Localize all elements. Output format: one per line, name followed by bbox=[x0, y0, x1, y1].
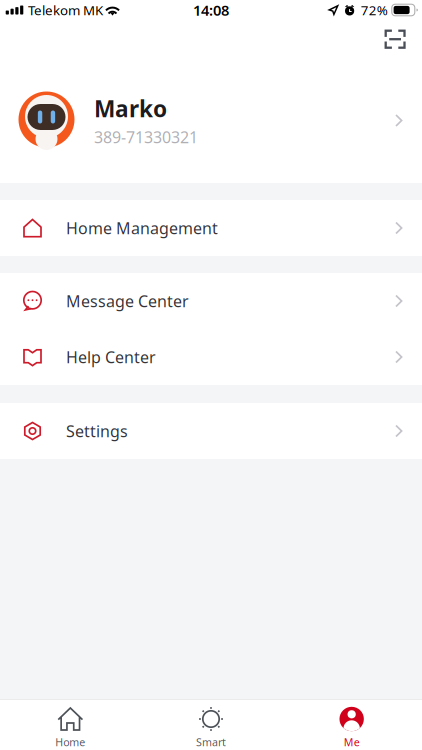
button[interactable]: Scan QR code bbox=[374, 20, 416, 58]
staticText: Smart bbox=[196, 735, 226, 749]
button[interactable]: Marko bbox=[0, 58, 422, 183]
staticText: Marko bbox=[94, 93, 167, 123]
staticText: 14:08 bbox=[193, 0, 229, 20]
button[interactable]: Me bbox=[281, 700, 422, 750]
staticText: 72% bbox=[361, 1, 388, 19]
staticText: Settings bbox=[66, 420, 128, 442]
button[interactable]: Home bbox=[0, 700, 141, 750]
button[interactable]: Settings bbox=[0, 403, 422, 459]
button[interactable]: Smart bbox=[141, 700, 281, 750]
staticText: 389-71330321 bbox=[94, 126, 198, 148]
staticText: Home bbox=[55, 735, 85, 749]
staticText: Home Management bbox=[66, 217, 218, 239]
staticText: Help Center bbox=[66, 346, 156, 368]
button[interactable]: Home Management bbox=[0, 200, 422, 256]
staticText: Message Center bbox=[66, 290, 189, 312]
staticText: Telekom MK bbox=[28, 1, 103, 19]
button[interactable]: Message Center bbox=[0, 273, 422, 329]
staticText: Me bbox=[344, 735, 360, 749]
button[interactable]: Help Center bbox=[0, 329, 422, 385]
